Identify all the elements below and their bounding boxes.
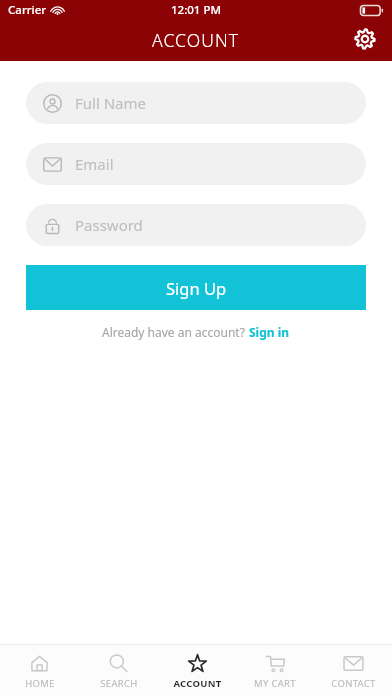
button[interactable]: Sign Up [26,265,366,310]
staticText: Email [75,154,114,174]
button[interactable]: Password [26,204,366,246]
staticText: ACCOUNT [152,28,240,52]
button[interactable]: HOME [0,644,79,696]
staticText: SEARCH [100,677,138,690]
button[interactable]: Sign in [249,324,290,340]
button[interactable]: Email [26,143,366,185]
button[interactable]: SEARCH [79,644,158,696]
staticText: HOME [25,677,55,690]
staticText: Carrier [8,2,47,18]
staticText: Sign Up [166,277,227,299]
staticText: ACCOUNT [173,677,222,690]
staticText: 12:01 PM [171,2,222,18]
staticText: Sign in [249,324,290,340]
button[interactable]: CONTACT [314,644,392,696]
button[interactable]: Settings [348,22,382,56]
button[interactable]: Full Name [26,82,366,124]
button[interactable]: ACCOUNT [158,644,236,696]
staticText: CONTACT [331,677,376,690]
staticText: MY CART [254,677,296,690]
button[interactable]: MY CART [236,644,314,696]
staticText: Full Name [75,93,146,113]
staticText: Password [75,215,143,235]
staticText: Already have an account? [102,324,249,340]
